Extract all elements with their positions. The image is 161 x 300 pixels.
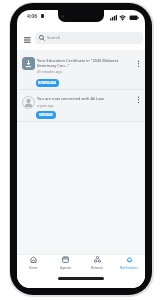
button[interactable] <box>137 96 140 104</box>
staticText: a year ago <box>37 103 54 108</box>
staticText: 4:06 <box>27 13 37 20</box>
staticText: Search <box>47 35 61 41</box>
button[interactable]: Agenda <box>49 256 81 270</box>
staticText: Veterinary Con..." <box>37 63 70 68</box>
staticText: MESSAGE <box>39 113 53 117</box>
button[interactable] <box>24 37 31 43</box>
staticText: DOWNLOAD <box>38 81 57 85</box>
staticText: Agenda <box>60 266 71 270</box>
button[interactable] <box>17 90 145 122</box>
button[interactable]: DOWNLOAD <box>36 79 59 87</box>
button[interactable]: MESSAGE <box>36 111 56 119</box>
staticText: 41 minutes ago <box>37 69 62 74</box>
button[interactable]: Search <box>35 32 143 44</box>
button[interactable] <box>17 50 145 90</box>
staticText: You are now connected with Ali Law. <box>37 96 105 101</box>
button[interactable]: Network <box>81 256 113 270</box>
staticText: Notifications <box>120 266 138 270</box>
staticText: Network <box>91 266 104 270</box>
button[interactable] <box>137 60 140 68</box>
staticText: Your Education Certificate in "2026 Midw… <box>37 58 119 63</box>
button[interactable]: Notifications <box>113 256 145 270</box>
button[interactable]: Home <box>17 256 49 270</box>
staticText: Home <box>29 266 38 270</box>
